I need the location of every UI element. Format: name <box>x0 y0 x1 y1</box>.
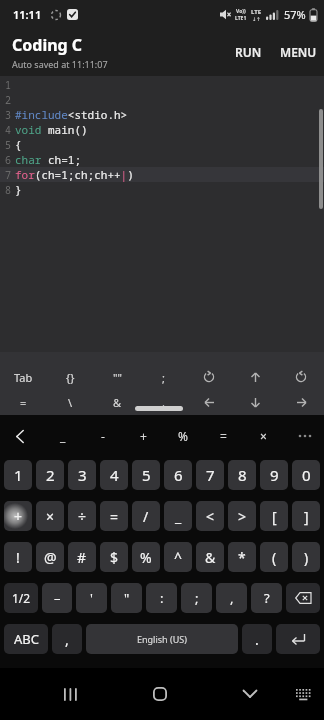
staticText: 7 <box>5 168 11 182</box>
button[interactable]: _ <box>164 501 192 531</box>
button[interactable]: ; <box>140 362 186 392</box>
button[interactable]: MENU <box>276 40 321 64</box>
staticText: [ <box>272 507 277 526</box>
button[interactable] <box>286 583 320 613</box>
button[interactable]: Tab <box>0 362 47 392</box>
button[interactable]: = <box>100 501 128 531</box>
button[interactable] <box>278 392 324 412</box>
button[interactable] <box>278 362 324 392</box>
button[interactable]: ) <box>292 542 320 572</box>
button[interactable]: 9 <box>260 460 288 490</box>
button[interactable]: , <box>52 624 82 654</box>
button[interactable]: : <box>146 583 177 613</box>
button[interactable]: > <box>228 501 256 531</box>
button[interactable] <box>236 680 264 708</box>
button[interactable]: + <box>4 501 32 531</box>
staticText: @ <box>44 548 57 567</box>
staticText: = <box>20 395 27 410</box>
staticText: × <box>46 507 55 526</box>
button[interactable]: ABC <box>4 624 48 654</box>
button[interactable] <box>10 426 30 446</box>
button[interactable]: ? <box>251 583 282 613</box>
staticText: # <box>77 548 87 567</box>
button[interactable]: + <box>123 421 163 451</box>
staticText: 5 <box>142 465 151 485</box>
staticText: ( <box>272 548 277 567</box>
button[interactable]: 3 <box>68 460 96 490</box>
staticText: 2 <box>46 465 55 485</box>
staticText: / <box>143 507 149 526</box>
button[interactable]: ( <box>260 542 288 572</box>
button[interactable]: 1/2 <box>4 583 38 613</box>
button[interactable]: < <box>196 501 224 531</box>
button[interactable]: – <box>42 583 72 613</box>
button[interactable]: 6 <box>164 460 192 490</box>
button[interactable]: 0 <box>292 460 320 490</box>
staticText: ' <box>90 589 93 607</box>
button[interactable]: _ <box>43 421 83 451</box>
button[interactable]: ' <box>76 583 107 613</box>
button[interactable]: × <box>243 421 283 451</box>
button[interactable]: \ <box>47 392 94 412</box>
staticText: ? <box>264 589 270 607</box>
button[interactable]: ^ <box>164 542 192 572</box>
button[interactable]: " <box>111 583 142 613</box>
staticText: ; <box>195 589 199 607</box>
button[interactable]: RUN <box>231 40 266 64</box>
staticText: + <box>14 507 23 526</box>
staticText: Coding C <box>12 34 83 56</box>
staticText: 5 <box>5 138 11 152</box>
staticText: 1 <box>14 465 23 485</box>
button[interactable]: × <box>36 501 64 531</box>
button[interactable]: & <box>94 392 140 412</box>
button[interactable]: & <box>196 542 224 572</box>
staticText: : <box>160 589 164 607</box>
button[interactable]: - <box>83 421 123 451</box>
button[interactable] <box>276 624 320 654</box>
button[interactable]: ÷ <box>68 501 96 531</box>
staticText: 1 <box>5 78 11 92</box>
button[interactable]: # <box>68 542 96 572</box>
button[interactable] <box>232 392 278 412</box>
staticText: MENU <box>280 44 317 60</box>
button[interactable]: 8 <box>228 460 256 490</box>
staticText: 4 <box>5 123 11 137</box>
button[interactable] <box>146 680 174 708</box>
staticText: { <box>15 137 22 152</box>
button[interactable]: 7 <box>196 460 224 490</box>
button[interactable]: 4 <box>100 460 128 490</box>
button[interactable] <box>186 392 232 412</box>
button[interactable] <box>186 362 232 392</box>
button[interactable]: "" <box>94 362 140 392</box>
button[interactable]: ; <box>181 583 212 613</box>
button[interactable] <box>289 680 317 708</box>
button[interactable]: 5 <box>132 460 160 490</box>
button[interactable]: , <box>216 583 247 613</box>
button[interactable]: @ <box>36 542 64 572</box>
button[interactable] <box>57 680 85 708</box>
button[interactable]: / <box>132 501 160 531</box>
button[interactable]: % <box>163 421 203 451</box>
button[interactable]: . <box>242 624 272 654</box>
button[interactable]: = <box>0 392 47 412</box>
button[interactable]: = <box>203 421 243 451</box>
staticText: LTE <box>251 8 262 16</box>
button[interactable]: {} <box>47 362 94 392</box>
staticText: , <box>65 630 69 649</box>
button[interactable]: [ <box>260 501 288 531</box>
button[interactable]: * <box>228 542 256 572</box>
button[interactable]: 2 <box>36 460 64 490</box>
button[interactable]: 1 <box>4 460 32 490</box>
staticText: $ <box>110 548 119 567</box>
button[interactable]: ! <box>4 542 32 572</box>
button[interactable]: , <box>140 392 186 412</box>
staticText: = <box>110 507 119 526</box>
staticText: 3 <box>78 465 87 485</box>
button[interactable]: % <box>132 542 160 572</box>
button[interactable]: $ <box>100 542 128 572</box>
button[interactable]: English (US) <box>86 624 238 654</box>
staticText: ) <box>304 548 309 567</box>
staticText: 8 <box>238 465 247 485</box>
button[interactable] <box>232 362 278 392</box>
button[interactable]: ] <box>292 501 320 531</box>
